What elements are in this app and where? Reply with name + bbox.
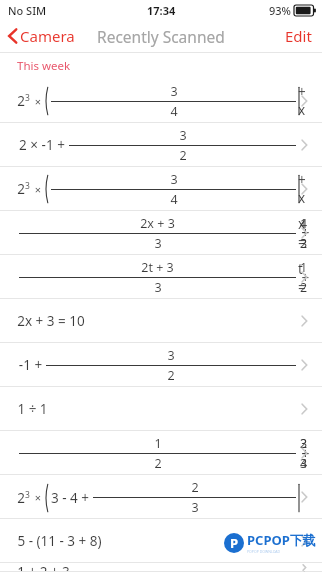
staticText: 2t + 3 bbox=[141, 259, 174, 276]
staticText: × bbox=[30, 490, 43, 505]
staticText: 2 bbox=[17, 180, 25, 198]
button[interactable]: 2 bbox=[0, 475, 322, 519]
staticText: POPOP DOWNLOAD bbox=[247, 549, 281, 554]
staticText: 3 bbox=[25, 489, 30, 501]
staticText: 93% bbox=[269, 3, 291, 18]
button[interactable]: Edit bbox=[275, 20, 322, 52]
staticText: 2 bbox=[17, 92, 25, 110]
button[interactable]: 2t + 3 bbox=[0, 255, 322, 299]
staticText: 2 bbox=[179, 147, 187, 164]
button[interactable]: -1 + bbox=[0, 343, 322, 387]
staticText: Camera bbox=[20, 26, 75, 46]
staticText: 1 ÷ 1 bbox=[17, 400, 48, 418]
staticText: 2 bbox=[154, 455, 162, 472]
staticText: × bbox=[30, 94, 43, 109]
staticText: 2 × -1 + bbox=[17, 136, 67, 154]
staticText: 3 bbox=[154, 279, 162, 296]
button[interactable]: 1 + 2 + 3 bbox=[0, 563, 322, 572]
staticText: 1 + 2 + 3 bbox=[17, 563, 70, 572]
staticText: 3 bbox=[154, 235, 162, 252]
staticText: No SIM bbox=[8, 3, 47, 18]
staticText: 2x + 3 = 10 bbox=[17, 312, 85, 330]
staticText: 2x + 3 bbox=[140, 215, 175, 232]
staticText: 3 - 4 + bbox=[49, 489, 91, 507]
staticText: × bbox=[30, 182, 43, 197]
staticText: Edit bbox=[285, 26, 312, 46]
staticText: 3 bbox=[170, 83, 178, 100]
staticText: 3 bbox=[191, 499, 199, 516]
staticText: 3 bbox=[170, 171, 178, 188]
button[interactable]: 2 × -1 + bbox=[0, 123, 322, 167]
staticText: 2 bbox=[17, 489, 25, 507]
staticText: 17:34 bbox=[147, 3, 176, 18]
staticText: Recently Scanned bbox=[97, 26, 225, 47]
staticText: PCPOP下载 bbox=[247, 531, 316, 549]
staticText: -1 + bbox=[17, 356, 44, 374]
staticText: 2 bbox=[191, 479, 199, 496]
button[interactable]: 5 - (11 - 3 + 8) bbox=[0, 519, 322, 563]
button[interactable]: 1 bbox=[0, 431, 322, 475]
staticText: 4 bbox=[170, 191, 178, 208]
button[interactable]: 2x + 3 = 10 bbox=[0, 299, 322, 343]
staticText: 3 bbox=[25, 180, 30, 192]
button[interactable]: 2x + 3 bbox=[0, 211, 322, 255]
staticText: 5 - (11 - 3 + 8) bbox=[17, 532, 102, 550]
button[interactable]: Camera bbox=[0, 20, 83, 52]
button[interactable]: 1 ÷ 1 bbox=[0, 387, 322, 431]
staticText: P bbox=[230, 534, 239, 552]
staticText: 3 bbox=[167, 347, 175, 364]
staticText: This week bbox=[17, 58, 71, 74]
staticText: 2 bbox=[167, 367, 175, 384]
staticText: 1 bbox=[154, 435, 162, 452]
staticText: 4 bbox=[170, 103, 178, 120]
staticText: 3 bbox=[25, 92, 30, 104]
button[interactable]: 2 bbox=[0, 79, 322, 123]
staticText: 3 bbox=[179, 127, 187, 144]
button[interactable]: 2 bbox=[0, 167, 322, 211]
